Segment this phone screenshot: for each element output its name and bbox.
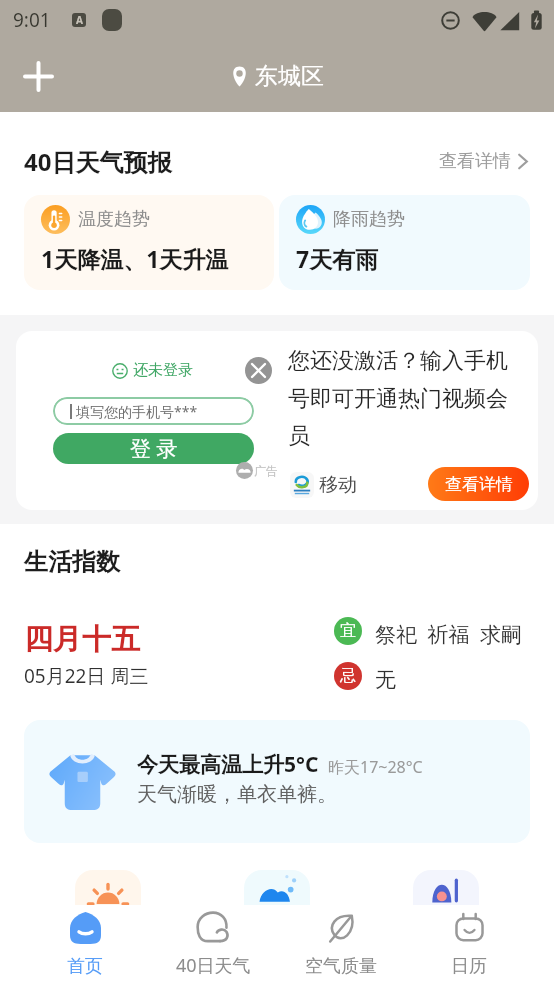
staticText: 降雨趋势	[333, 208, 405, 231]
staticText: 您还没激活？输入手机号即可开通热门视频会员	[288, 347, 522, 449]
button[interactable]: 东城区	[227, 58, 328, 95]
staticText: 温度趋势	[78, 208, 150, 231]
staticText: 40日天气预报	[24, 145, 172, 178]
button[interactable]: 降雨趋势	[279, 195, 530, 290]
staticText: 空气质量	[305, 955, 377, 978]
staticText: 无	[375, 667, 396, 693]
button[interactable]: 温度趋势	[24, 195, 274, 290]
staticText: 05月22日 周三	[24, 663, 149, 689]
button[interactable]	[244, 870, 310, 936]
button[interactable]: 查看详情	[428, 467, 529, 501]
staticText: 7天有雨	[296, 243, 379, 274]
button[interactable]: 首页	[21, 905, 149, 984]
staticText: 还未登录	[133, 361, 193, 380]
button[interactable]: 今天最高温上升5°C	[24, 720, 530, 843]
staticText: 查看详情	[445, 474, 513, 495]
button[interactable]: 查看详情	[439, 146, 528, 177]
staticText: 登 录	[130, 434, 178, 463]
staticText: 40日天气	[176, 953, 251, 978]
staticText: 天气渐暖，单衣单裤。	[137, 782, 337, 807]
button[interactable]: Add city	[14, 52, 62, 100]
staticText: 生活指数	[24, 547, 120, 577]
staticText: 宜	[340, 621, 356, 641]
button[interactable]: Close ad	[245, 357, 272, 384]
staticText: 东城区	[255, 62, 324, 91]
staticText: 首页	[67, 955, 103, 978]
staticText: 祭祀 祈福 求嗣	[375, 620, 522, 649]
staticText: 查看详情	[439, 150, 511, 173]
staticText: 日历	[451, 955, 487, 978]
staticText: 昨天17~28°C	[328, 756, 423, 778]
staticText: 填写您的手机号***	[76, 402, 198, 421]
button[interactable]: 还未登录	[16, 331, 538, 510]
staticText: 广告	[254, 463, 278, 478]
staticText: 1天降温、1天升温	[41, 243, 229, 274]
staticText: 四月十五	[24, 621, 140, 658]
staticText: 今天最高温上升5°C	[137, 750, 319, 779]
staticText: 忌	[340, 666, 356, 686]
button[interactable]: 40日天气	[149, 905, 277, 984]
button[interactable]: 日历	[405, 905, 533, 984]
staticText: 移动	[319, 473, 357, 497]
button[interactable]: 填写您的手机号***	[53, 397, 254, 425]
staticText: 9:01	[13, 7, 51, 33]
button[interactable]	[413, 870, 479, 936]
button[interactable]	[75, 870, 141, 936]
button[interactable]: 空气质量	[277, 905, 405, 984]
staticText: A	[76, 13, 83, 27]
button[interactable]: 登 录	[53, 433, 254, 464]
